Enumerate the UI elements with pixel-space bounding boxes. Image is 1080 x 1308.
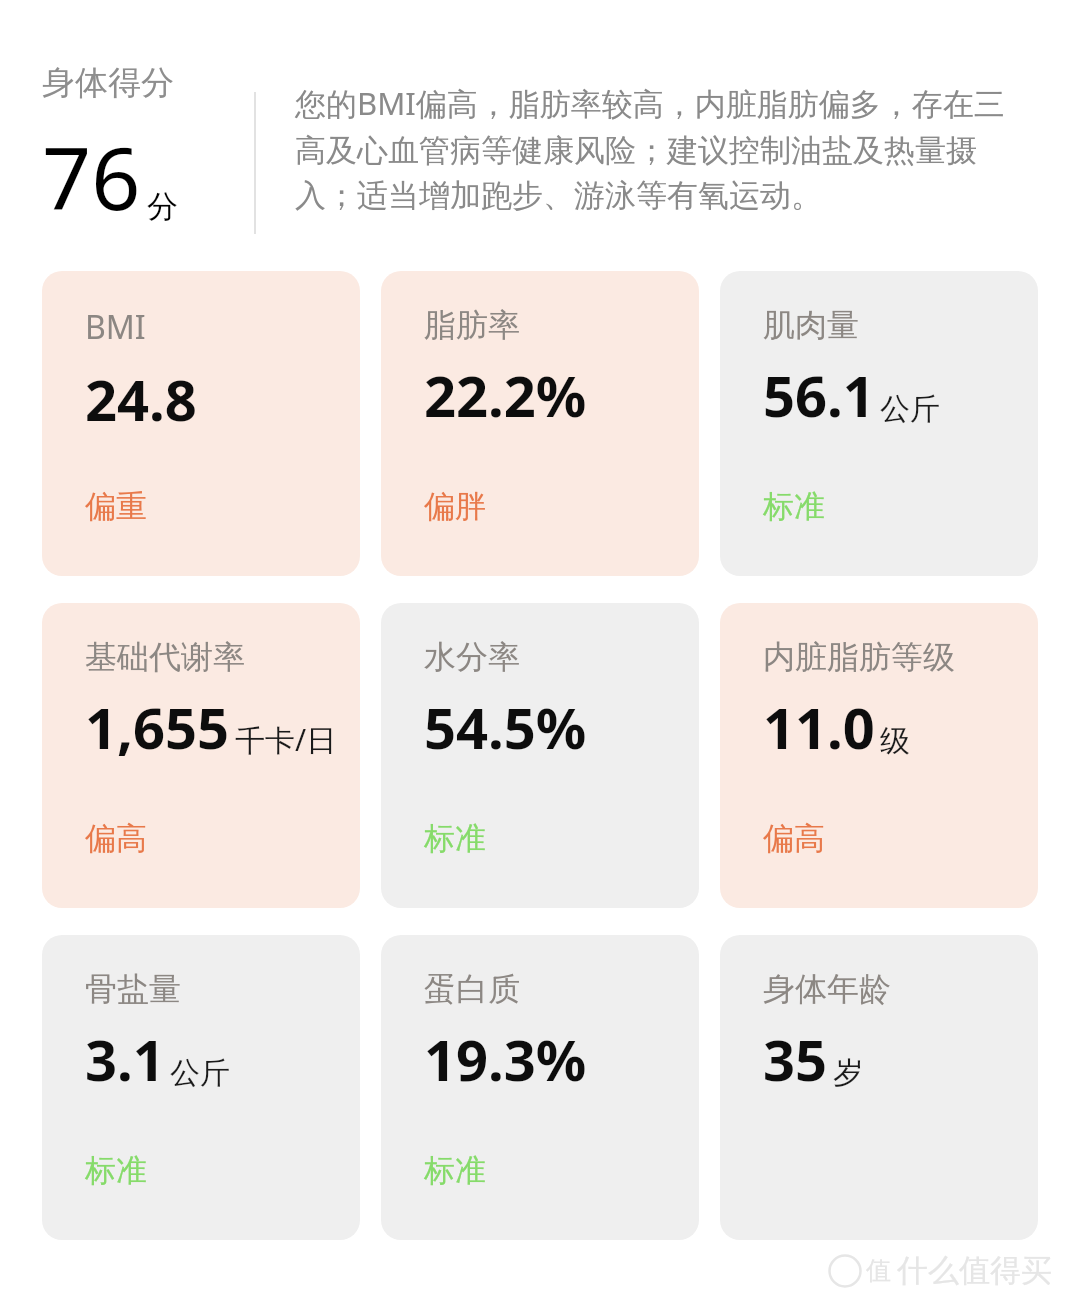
button[interactable]: 内脏脂肪等级 [720,603,1038,908]
staticText: 肌肉量 [763,305,859,345]
staticText: 1,655 [85,689,230,765]
staticText: 24.8 [85,361,197,437]
staticText: 公斤 [880,390,940,428]
button[interactable]: 骨盐量 [42,935,360,1240]
staticText: 什么值得买 [897,1251,1052,1290]
staticText: 身体年龄 [763,969,891,1009]
staticText: 级 [880,722,910,760]
staticText: 56.1 [763,357,875,433]
staticText: 骨盐量 [85,969,181,1009]
staticText: 35 [763,1021,828,1097]
button[interactable]: 身体年龄 [720,935,1038,1240]
staticText: 标准 [424,819,486,858]
staticText: 3.1 [85,1021,165,1097]
staticText: 内脏脂肪等级 [763,637,955,677]
staticText: 54.5% [424,689,587,765]
staticText: 身体得分 [42,62,174,104]
staticText: 19.3% [424,1021,587,1097]
staticText: 标准 [763,487,825,526]
staticText: 偏重 [85,487,147,526]
button[interactable]: BMI [42,271,360,576]
staticText: 11.0 [763,689,875,765]
button[interactable]: 脂肪率 [381,271,699,576]
staticText: BMI [85,305,146,349]
button[interactable]: 基础代谢率 [42,603,360,908]
staticText: 岁 [833,1054,863,1092]
staticText: 公斤 [170,1054,230,1092]
staticText: 偏高 [763,819,825,858]
staticText: 脂肪率 [424,305,520,345]
staticText: 标准 [424,1151,486,1190]
staticText: 偏高 [85,819,147,858]
staticText: 偏胖 [424,487,486,526]
staticText: 您的BMI偏高，脂肪率较高，内脏脂肪偏多，存在三高及心血管病等健康风险；建议控制… [295,82,1035,215]
staticText: 值 [866,1255,891,1286]
staticText: 千卡/日 [235,719,337,760]
staticText: 标准 [85,1151,147,1190]
button[interactable]: 蛋白质 [381,935,699,1240]
button[interactable]: 水分率 [381,603,699,908]
staticText: 基础代谢率 [85,637,245,677]
staticText: 分 [147,187,178,226]
staticText: 水分率 [424,637,520,677]
button[interactable]: 肌肉量 [720,271,1038,576]
staticText: 22.2% [424,357,587,433]
staticText: 蛋白质 [424,969,520,1009]
staticText: 76 [42,118,141,235]
